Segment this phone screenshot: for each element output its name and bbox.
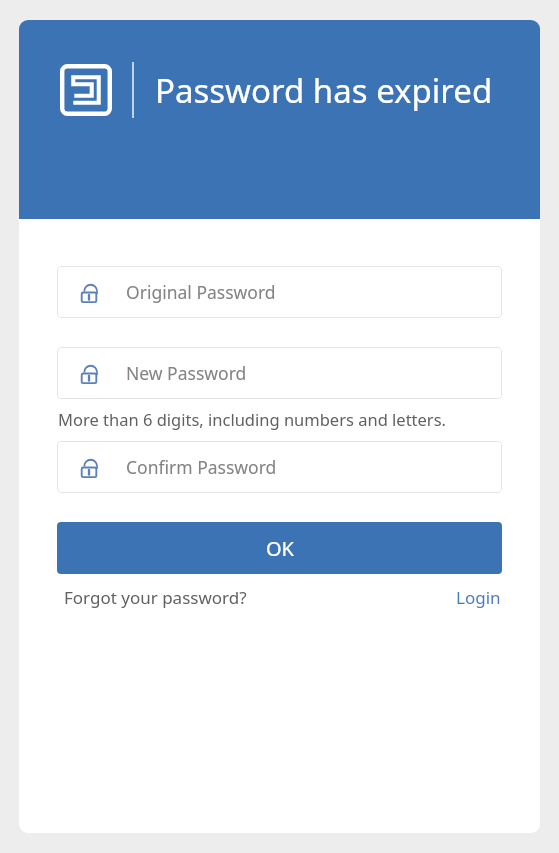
staticText: Confirm Password [126,455,277,479]
staticText: Original Password [126,280,276,304]
button[interactable]: OK [57,522,502,574]
staticText: Password has expired [155,68,493,113]
button[interactable]: Original Password [57,266,502,318]
staticText: More than 6 digits, including numbers an… [58,408,446,430]
staticText: OK [266,535,294,562]
staticText: New Password [126,361,247,385]
button[interactable]: Forgot your password? [64,586,247,609]
button[interactable]: New Password [57,347,502,399]
button[interactable]: Confirm Password [57,441,502,493]
staticText: Login [456,586,501,609]
other: App logo [60,64,112,116]
button[interactable]: Login [456,586,501,609]
staticText: Forgot your password? [64,586,247,609]
